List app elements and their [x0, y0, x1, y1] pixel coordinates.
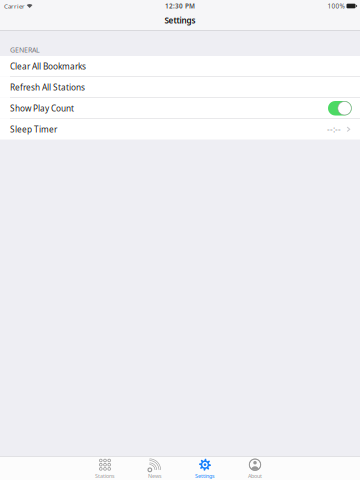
button[interactable]: Show Play Count: [328, 101, 352, 115]
button[interactable]: Refresh All Stations: [0, 77, 360, 97]
button[interactable]: About: [230, 456, 280, 480]
button[interactable]: Stations: [80, 456, 130, 480]
button[interactable]: Settings: [180, 456, 230, 480]
staticText: Settings: [164, 15, 195, 26]
staticText: Stations: [95, 472, 115, 480]
staticText: --:--: [327, 124, 341, 135]
button[interactable]: News: [130, 456, 180, 480]
staticText: Carrier: [4, 2, 25, 10]
staticText: News: [148, 472, 162, 480]
staticText: About: [248, 472, 262, 480]
staticText: GENERAL: [10, 45, 40, 54]
staticText: Settings: [195, 472, 215, 480]
staticText: Refresh All Stations: [10, 82, 85, 93]
staticText: 100%: [327, 2, 344, 10]
staticText: Show Play Count: [10, 103, 74, 114]
button[interactable]: Clear All Bookmarks: [0, 56, 360, 76]
staticText: Clear All Bookmarks: [10, 61, 86, 72]
staticText: Sleep Timer: [10, 124, 57, 135]
button[interactable]: Sleep Timer: [0, 119, 360, 139]
staticText: 12:30 PM: [165, 2, 195, 10]
